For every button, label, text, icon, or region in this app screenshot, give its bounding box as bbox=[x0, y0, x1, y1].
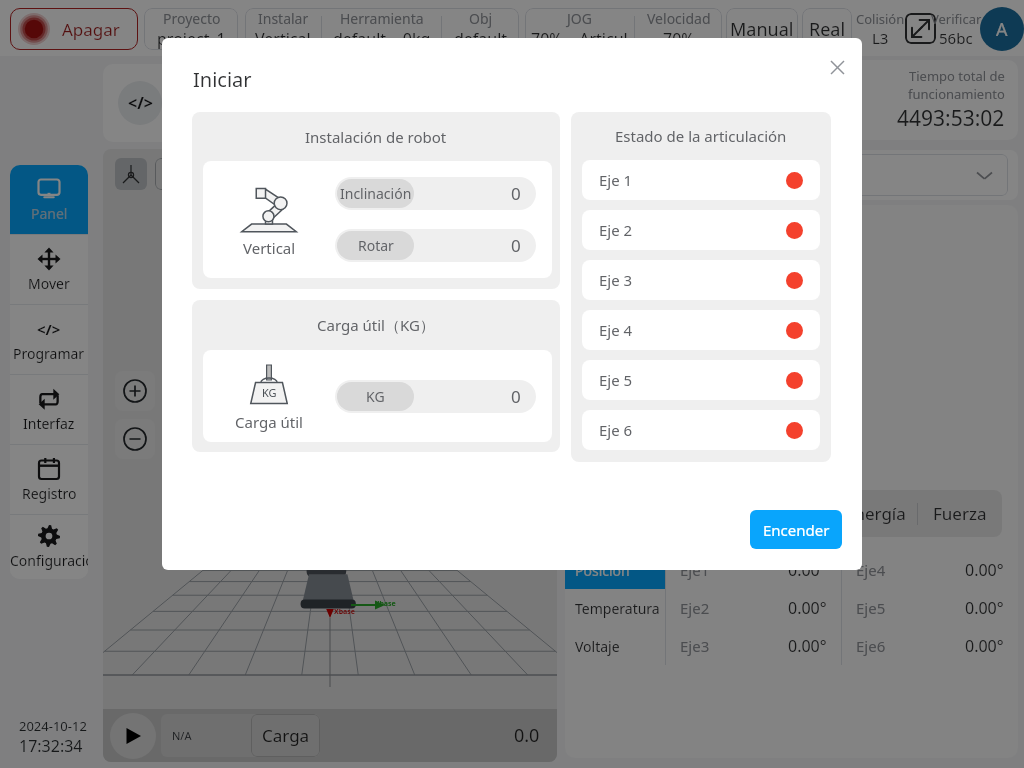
staticText: 17:32:34 bbox=[19, 735, 83, 757]
button[interactable]: Voltaje bbox=[575, 627, 665, 665]
staticText: 0 bbox=[511, 234, 521, 257]
button[interactable]: Acercar bbox=[115, 371, 155, 411]
staticText: Instalación de robot bbox=[305, 127, 447, 147]
staticText: KG bbox=[366, 387, 385, 406]
staticText: default bbox=[454, 28, 508, 50]
staticText: 0.00° bbox=[788, 597, 827, 619]
staticText: 4493:53:02 bbox=[897, 104, 1005, 133]
staticText: Apagar bbox=[62, 18, 120, 41]
staticText: L3 bbox=[872, 28, 889, 48]
button[interactable]: JOG bbox=[525, 8, 722, 50]
button[interactable]: Eje 1 bbox=[582, 160, 820, 200]
staticText: Inclinación bbox=[340, 184, 412, 203]
staticText: Carga útil（KG） bbox=[317, 315, 435, 335]
staticText: 0.00° bbox=[788, 635, 827, 657]
staticText: Eje2 bbox=[680, 598, 710, 618]
staticText: Herramienta bbox=[340, 9, 424, 28]
staticText: Carga bbox=[262, 724, 310, 747]
button[interactable]: Apagar bbox=[10, 8, 138, 50]
staticText: Tiempo total de bbox=[909, 67, 1005, 85]
staticText: Eje 3 bbox=[599, 270, 633, 290]
button[interactable]: Temperatura bbox=[575, 589, 665, 627]
button[interactable]: Pantalla completa bbox=[905, 13, 936, 44]
button[interactable]: Fuerza bbox=[918, 490, 1002, 537]
button[interactable]: Reproducir bbox=[110, 713, 156, 759]
staticText: Eje 6 bbox=[599, 420, 633, 440]
button[interactable]: Energía bbox=[833, 490, 917, 537]
button[interactable]: Proyecto bbox=[144, 8, 238, 50]
staticText: default 0kg bbox=[333, 28, 431, 50]
staticText: Temperatura bbox=[575, 599, 660, 618]
staticText: Iniciar bbox=[193, 66, 252, 93]
staticText: Eje1 bbox=[680, 560, 710, 580]
staticText: JOG bbox=[567, 9, 592, 28]
button[interactable]: Eje 3 bbox=[582, 260, 820, 300]
button[interactable]: Posición bbox=[575, 551, 665, 589]
staticText: 0 bbox=[511, 385, 521, 408]
staticText: Eje5 bbox=[856, 598, 886, 618]
button[interactable]: Configuración bbox=[10, 515, 88, 579]
button[interactable]: Encender bbox=[750, 510, 842, 549]
staticText: funcionamiento bbox=[908, 85, 1005, 103]
staticText: Vertical bbox=[255, 28, 311, 50]
staticText: 0.00° bbox=[965, 559, 1004, 581]
staticText: 0.00° bbox=[788, 559, 827, 581]
staticText: Interfaz bbox=[23, 414, 75, 433]
staticText: Obj bbox=[469, 9, 493, 28]
staticText: Programar bbox=[13, 344, 85, 363]
button[interactable]: Eje 6 bbox=[582, 410, 820, 450]
staticText: Voltaje bbox=[575, 637, 620, 656]
staticText: Eje4 bbox=[856, 560, 886, 580]
staticText: Vertical bbox=[243, 238, 296, 258]
button[interactable]: Manual bbox=[726, 8, 798, 50]
button[interactable]: Alejar bbox=[115, 419, 155, 459]
staticText: A bbox=[996, 17, 1008, 42]
staticText: 2024-10-12 bbox=[19, 717, 87, 735]
button[interactable]: Mover bbox=[10, 235, 88, 304]
staticText: Eje 1 bbox=[599, 170, 633, 190]
button[interactable]: Carga bbox=[251, 714, 320, 757]
button[interactable]: Interfaz bbox=[10, 375, 88, 444]
button[interactable]: Registro bbox=[10, 445, 88, 514]
staticText: Panel bbox=[31, 204, 68, 223]
staticText: Estado de la articulación bbox=[615, 126, 787, 146]
staticText: Carga útil bbox=[235, 412, 303, 432]
button[interactable]: Programar bbox=[103, 64, 177, 142]
button[interactable]: Ejes bbox=[115, 158, 147, 190]
staticText: 0.00° bbox=[965, 635, 1004, 657]
staticText: </> bbox=[37, 319, 61, 339]
button[interactable]: </> bbox=[10, 305, 88, 374]
staticText: Proyecto bbox=[163, 9, 221, 28]
staticText: 70% bbox=[663, 28, 695, 50]
staticText: Eje 2 bbox=[599, 220, 633, 240]
staticText: Rotar bbox=[358, 236, 394, 255]
button[interactable]: Cuenta bbox=[980, 7, 1024, 51]
staticText: Colisión bbox=[856, 10, 904, 28]
staticText: 56bc bbox=[939, 28, 973, 48]
staticText: Instalar bbox=[258, 9, 309, 28]
staticText: Fuerza bbox=[933, 502, 987, 525]
staticText: Real bbox=[809, 17, 846, 42]
button[interactable]: Eje 4 bbox=[582, 310, 820, 350]
staticText: Verificar bbox=[931, 10, 982, 28]
button[interactable]: Vista bbox=[155, 158, 187, 190]
button[interactable]: Real bbox=[802, 8, 852, 50]
button[interactable]: Instalar bbox=[245, 8, 519, 50]
staticText: Energía bbox=[845, 502, 906, 525]
button[interactable]: Cerrar bbox=[823, 53, 851, 81]
staticText: 70% Articul bbox=[531, 28, 628, 50]
staticText: 0.00° bbox=[965, 597, 1004, 619]
button[interactable]: Seleccionar programa bbox=[575, 154, 1008, 196]
staticText: Posición bbox=[575, 561, 630, 580]
staticText: Mover bbox=[28, 274, 70, 293]
staticText: Encender bbox=[763, 520, 830, 540]
button[interactable]: Panel bbox=[10, 165, 88, 234]
staticText: KG bbox=[262, 385, 277, 400]
staticText: Eje 5 bbox=[599, 370, 633, 390]
button[interactable]: Eje 5 bbox=[582, 360, 820, 400]
button[interactable]: Eje 2 bbox=[582, 210, 820, 250]
staticText: Configuración bbox=[10, 551, 88, 570]
staticText: Eje3 bbox=[680, 636, 710, 656]
staticText: project_1 bbox=[157, 28, 226, 50]
staticText: N/A bbox=[172, 728, 192, 743]
